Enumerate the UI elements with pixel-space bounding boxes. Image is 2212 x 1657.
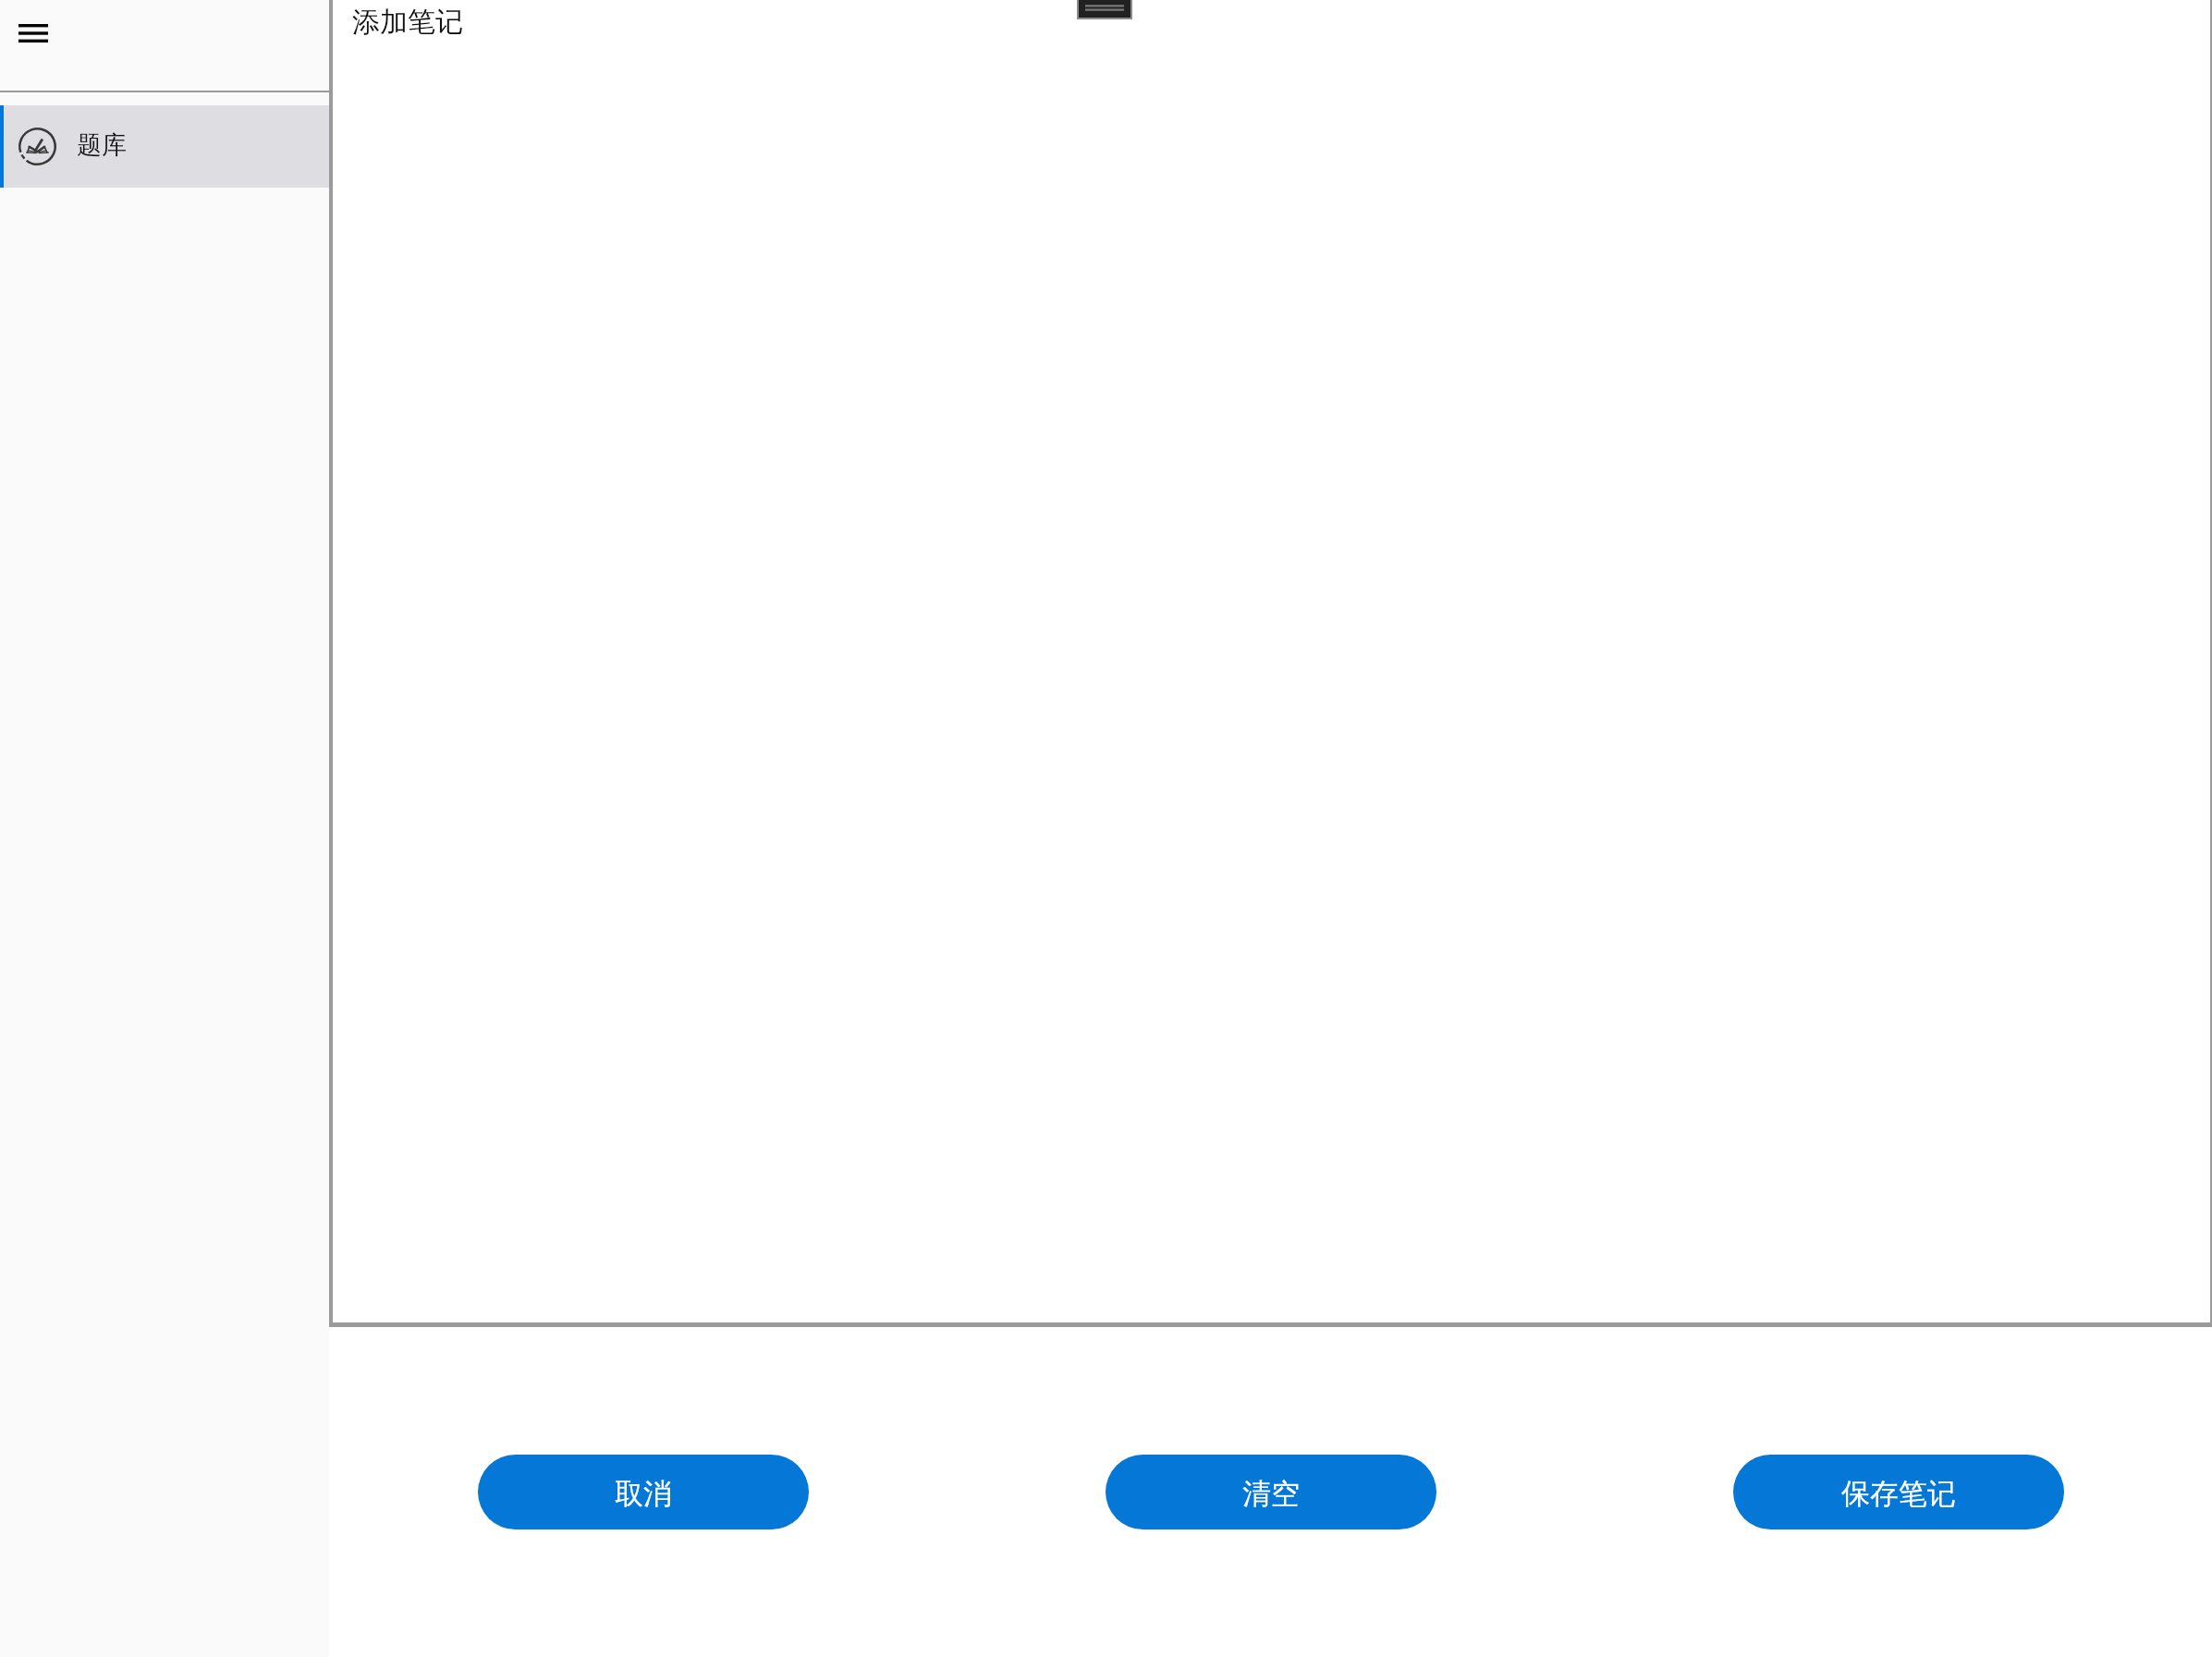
staticText: 取消 <box>615 1476 672 1512</box>
staticText: 题库 <box>77 129 127 161</box>
button[interactable]: Open navigation menu <box>7 7 59 59</box>
button[interactable]: 清空 <box>1106 1455 1436 1529</box>
button[interactable]: 保存笔记 <box>1733 1455 2064 1529</box>
button[interactable]: Menu popup <box>1077 0 1132 19</box>
button[interactable]: 取消 <box>478 1455 809 1529</box>
staticText: 添加笔记 <box>352 5 463 40</box>
button[interactable]: 题库 <box>0 105 329 188</box>
staticText: 清空 <box>1242 1476 1300 1512</box>
staticText: 保存笔记 <box>1841 1476 1956 1512</box>
